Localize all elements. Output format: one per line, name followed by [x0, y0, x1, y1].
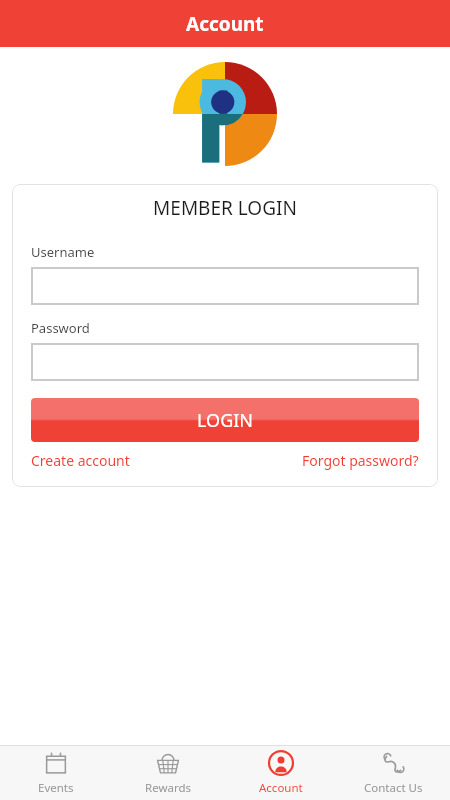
- staticText: Account: [186, 11, 264, 37]
- staticText: Contact Us: [364, 780, 423, 796]
- button[interactable]: [31, 267, 419, 305]
- staticText: Password: [31, 319, 90, 337]
- staticText: Forgot password?: [302, 451, 419, 470]
- staticText: Create account: [31, 451, 130, 470]
- staticText: Username: [31, 243, 95, 261]
- button[interactable]: Account: [224, 745, 337, 800]
- button[interactable]: [31, 343, 419, 381]
- staticText: Account: [259, 780, 303, 796]
- button[interactable]: Rewards: [112, 745, 224, 800]
- staticText: MEMBER LOGIN: [31, 195, 419, 221]
- staticText: Events: [38, 780, 74, 796]
- button[interactable]: Events: [0, 745, 112, 800]
- button[interactable]: Create account: [31, 451, 130, 470]
- button[interactable]: Forgot password?: [302, 451, 419, 470]
- staticText: LOGIN: [197, 408, 254, 433]
- staticText: Rewards: [145, 780, 191, 796]
- button[interactable]: LOGIN: [31, 398, 419, 442]
- button[interactable]: Contact Us: [337, 745, 450, 800]
